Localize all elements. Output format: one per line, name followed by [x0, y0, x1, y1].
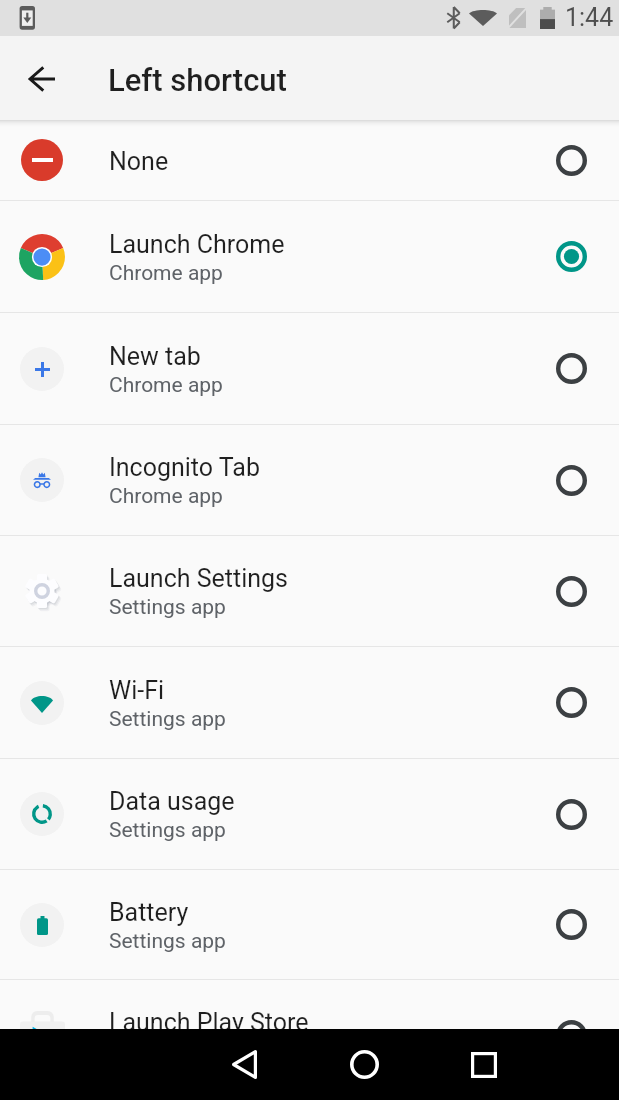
- button[interactable]: Launch Settings: [0, 536, 619, 647]
- button[interactable]: None: [0, 120, 619, 201]
- staticText: Chrome app: [109, 373, 223, 398]
- staticText: Battery: [109, 898, 189, 927]
- staticText: Wi-Fi: [109, 676, 165, 705]
- staticText: None: [109, 147, 169, 176]
- button[interactable]: Launch Play Store: [0, 980, 619, 1029]
- staticText: Settings app: [109, 929, 226, 954]
- button[interactable]: New tab: [0, 313, 619, 425]
- staticText: Left shortcut: [108, 62, 287, 98]
- staticText: Data usage: [109, 787, 235, 816]
- staticText: Incognito Tab: [109, 453, 260, 482]
- staticText: Settings app: [109, 707, 226, 732]
- staticText: Settings app: [109, 818, 226, 843]
- staticText: Launch Chrome: [109, 230, 285, 259]
- staticText: Settings app: [109, 595, 226, 620]
- button[interactable]: Data usage: [0, 759, 619, 870]
- staticText: 1:44: [565, 3, 614, 32]
- staticText: Chrome app: [109, 484, 223, 509]
- button[interactable]: Home: [324, 1029, 404, 1100]
- button[interactable]: Launch Chrome: [0, 201, 619, 313]
- button[interactable]: Battery: [0, 870, 619, 980]
- staticText: Launch Settings: [109, 564, 288, 593]
- staticText: New tab: [109, 342, 201, 371]
- button[interactable]: Recent apps: [444, 1029, 524, 1100]
- button[interactable]: Wi-Fi: [0, 647, 619, 759]
- button[interactable]: Navigate up: [14, 51, 70, 107]
- button[interactable]: Back: [204, 1029, 284, 1100]
- staticText: Launch Play Store: [109, 1008, 309, 1029]
- button[interactable]: Incognito Tab: [0, 425, 619, 536]
- staticText: Chrome app: [109, 261, 223, 286]
